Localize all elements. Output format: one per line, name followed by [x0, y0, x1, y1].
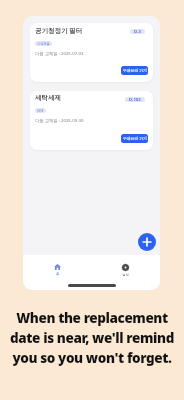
- staticText: D-102: [129, 97, 141, 102]
- staticText: When the replacement: [16, 309, 168, 327]
- staticText: 가전제품: [37, 42, 50, 46]
- staticText: 구매하러 가기: [123, 136, 147, 141]
- staticText: 세탁세제: [35, 94, 61, 102]
- button[interactable]: 구매하러 가기: [121, 66, 148, 75]
- staticText: 설정: [122, 273, 129, 277]
- button[interactable]: 홈: [23, 264, 91, 276]
- button[interactable]: 구매하러 가기: [121, 134, 148, 143]
- staticText: D-3: [134, 29, 141, 34]
- staticText: 다음 교체일 : 2025-07-03: [35, 50, 84, 56]
- staticText: 구매하러 가기: [123, 68, 147, 73]
- button[interactable]: 설정: [91, 264, 160, 277]
- staticText: 다음 교체일 : 2025-09-30: [35, 117, 84, 123]
- staticText: 홈: [56, 272, 60, 276]
- staticText: you so you won't forget.: [12, 349, 172, 367]
- button[interactable]: 공기청정기 필터: [30, 23, 153, 82]
- button[interactable]: Add item: [138, 233, 156, 251]
- button[interactable]: 세탁세제: [30, 91, 153, 150]
- staticText: date is near, we'll remind: [10, 329, 174, 347]
- staticText: 세제: [37, 109, 44, 113]
- staticText: 공기청정기 필터: [35, 26, 83, 35]
